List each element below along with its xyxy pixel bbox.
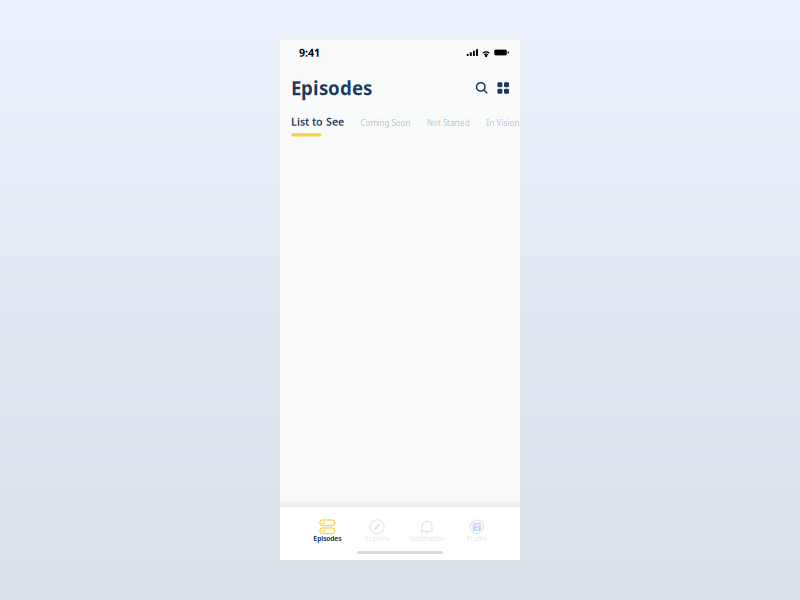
staticText: In Vision <box>486 118 519 128</box>
button[interactable]: List to See <box>291 116 344 136</box>
button[interactable]: Grid layout <box>497 82 509 94</box>
button[interactable]: Coming Soon <box>360 116 410 136</box>
button[interactable]: In Vision <box>486 116 519 136</box>
button[interactable]: Profile <box>452 519 502 543</box>
staticText: 9:41 <box>299 45 320 60</box>
staticText: List to See <box>291 115 344 129</box>
staticText: Profile <box>466 534 487 543</box>
button[interactable]: Explore <box>352 519 402 543</box>
button[interactable]: Notification <box>402 519 452 543</box>
staticText: Coming Soon <box>360 118 410 128</box>
button[interactable]: Episodes <box>302 519 352 543</box>
staticText: Episodes <box>313 534 341 543</box>
staticText: Notification <box>409 534 445 543</box>
staticText: Explore <box>365 534 390 543</box>
button[interactable]: Not Started <box>427 116 470 136</box>
button[interactable]: Search <box>476 82 488 94</box>
staticText: Episodes <box>291 76 372 100</box>
staticText: Not Started <box>427 118 470 128</box>
